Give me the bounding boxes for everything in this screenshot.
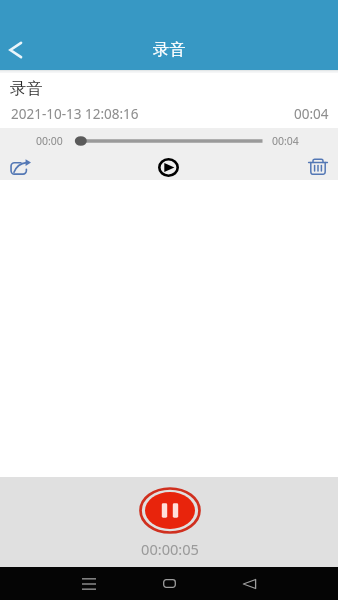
button[interactable]: Recents (71, 567, 107, 600)
staticText: 2021-10-13 12:08:16 (11, 105, 139, 123)
staticText: 00:00:05 (141, 539, 199, 559)
button[interactable]: Home (151, 567, 187, 600)
button[interactable]: 录音 (0, 70, 338, 128)
staticText: 00:04 (272, 134, 299, 148)
button[interactable]: Share (6, 152, 34, 180)
staticText: 00:04 (294, 105, 329, 123)
button[interactable]: Back (0, 28, 32, 72)
button[interactable]: Play (154, 153, 182, 181)
staticText: 00:00 (36, 134, 63, 148)
button[interactable]: Back (231, 567, 267, 600)
button[interactable]: Pause recording (139, 487, 201, 534)
staticText: 录音 (153, 39, 186, 60)
button[interactable]: Delete (304, 152, 332, 180)
staticText: 录音 (10, 78, 43, 99)
